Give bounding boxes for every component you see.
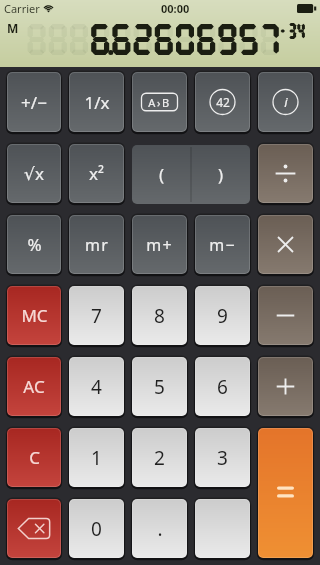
staticText: √x [24, 162, 44, 185]
button[interactable]: m− [195, 215, 250, 274]
staticText: 00:00 [161, 1, 190, 16]
button[interactable]: MC [7, 286, 61, 345]
button[interactable]: 2 [132, 428, 187, 487]
button[interactable]: . [132, 499, 187, 558]
button[interactable]: C [7, 428, 61, 487]
button[interactable]: 4 [69, 357, 124, 416]
button[interactable]: 5 [132, 357, 187, 416]
button[interactable]: 8 [132, 286, 187, 345]
button[interactable]: A to B conversion [132, 72, 187, 132]
button[interactable]: Plus [258, 357, 313, 416]
button[interactable]: mr [69, 215, 124, 274]
staticText: . [157, 516, 163, 542]
staticText: 1/x [84, 91, 110, 114]
staticText: % [27, 233, 42, 256]
staticText: m− [209, 234, 236, 256]
button[interactable]: ) [191, 145, 250, 204]
button[interactable]: 1/x [69, 72, 124, 132]
button[interactable]: 7 [69, 286, 124, 345]
button[interactable]: +/− [7, 72, 61, 132]
staticText: 4 [91, 374, 102, 400]
button[interactable]: m+ [132, 215, 187, 274]
staticText: i [284, 93, 288, 111]
staticText: x² [89, 162, 104, 185]
staticText: 6 [217, 374, 228, 400]
button[interactable]: Equals [258, 428, 313, 558]
staticText: +/− [21, 91, 47, 114]
button[interactable]: Multiply [258, 215, 313, 274]
button[interactable]: 3 [195, 428, 250, 487]
button[interactable]: 6 [195, 357, 250, 416]
button[interactable]: ( [132, 145, 191, 204]
button[interactable]: Divide [258, 144, 313, 203]
staticText: M [7, 20, 19, 36]
button[interactable] [195, 499, 250, 558]
staticText: 3 [217, 445, 228, 471]
staticText: A›B [148, 95, 171, 110]
staticText: mr [85, 234, 109, 256]
staticText: ) [218, 163, 224, 186]
staticText: AC [23, 375, 45, 398]
button[interactable]: x² [69, 144, 124, 203]
staticText: 8 [154, 303, 165, 329]
button[interactable]: 9 [195, 286, 250, 345]
button[interactable]: % [7, 215, 61, 274]
staticText: ( [159, 163, 165, 186]
button[interactable]: Minus [258, 286, 313, 345]
button[interactable]: 42 [195, 72, 250, 132]
staticText: 5 [154, 374, 165, 400]
button[interactable]: 1 [69, 428, 124, 487]
staticText: 42 [216, 94, 230, 110]
button[interactable]: AC [7, 357, 61, 416]
staticText: Carrier [4, 1, 40, 16]
staticText: 2 [154, 445, 165, 471]
staticText: 9 [217, 303, 228, 329]
staticText: 7 [91, 303, 102, 329]
button[interactable]: 0 [69, 499, 124, 558]
staticText: m+ [146, 234, 173, 256]
staticText: 0 [91, 516, 102, 542]
staticText: C [29, 446, 40, 469]
button[interactable]: Backspace [7, 499, 61, 558]
button[interactable]: Info [258, 72, 313, 132]
button[interactable]: Square root [7, 144, 61, 203]
staticText: 1 [91, 445, 102, 471]
staticText: MC [21, 304, 48, 327]
